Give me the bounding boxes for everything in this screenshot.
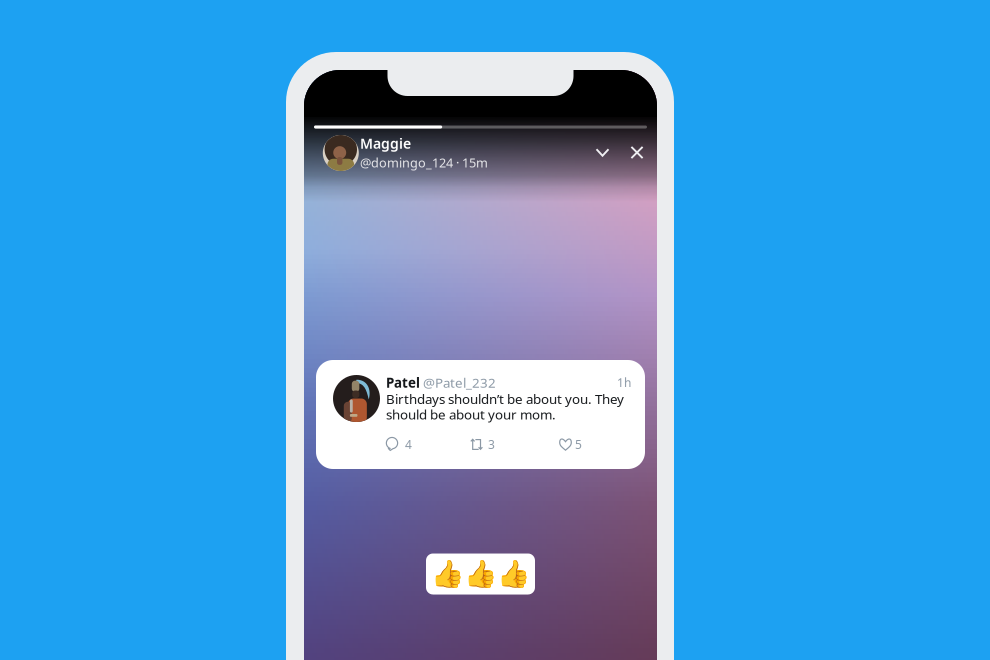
button[interactable]: Reply, 4 replies [386, 436, 470, 452]
staticText: Maggie [360, 134, 411, 153]
staticText: Patel [386, 373, 420, 392]
button[interactable]: React with three thumbs up [426, 553, 535, 594]
button[interactable]: Retweet, 3 retweets [470, 436, 559, 452]
staticText: 👍👍👍 [431, 558, 530, 590]
button[interactable]: Close fleet [620, 135, 654, 169]
staticText: Birthdays shouldn’t be about you. They s… [386, 391, 624, 422]
staticText: @Patel_232 [420, 373, 496, 392]
staticText: @domingo_124 · 15m [360, 154, 488, 171]
staticText: 3 [488, 436, 495, 452]
staticText: 5 [575, 436, 582, 452]
staticText: 4 [405, 436, 412, 452]
staticText: 1h [617, 374, 631, 391]
button[interactable]: Show replies [585, 135, 619, 169]
button[interactable]: Like, 5 likes [559, 436, 609, 452]
